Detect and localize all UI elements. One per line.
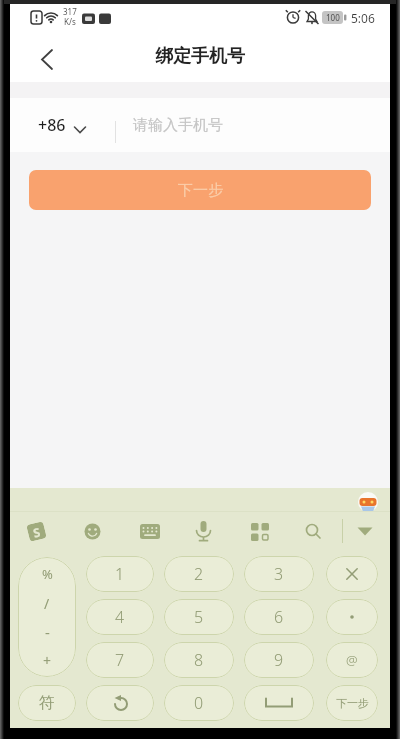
staticText: 1 [115,563,125,585]
button[interactable] [326,599,378,635]
button[interactable] [84,523,101,540]
staticText: 100 [326,12,340,23]
button[interactable]: 符 [18,685,76,721]
button[interactable]: +86 [38,98,96,152]
staticText: + [43,651,52,670]
button[interactable] [357,527,373,536]
button[interactable]: % [18,557,76,677]
staticText: 5 [194,606,204,628]
staticText: 符 [39,693,55,713]
staticText: K/s [64,16,76,27]
button[interactable] [326,556,378,592]
staticText: 请输入手机号 [133,116,223,135]
staticText: S [31,523,42,541]
button[interactable]: @ [326,642,378,678]
staticText: @ [346,651,358,669]
button[interactable]: 6 [244,599,314,635]
staticText: 绑定手机号 [155,45,245,68]
button[interactable]: 2 [164,556,234,592]
staticText: 下一步 [336,696,369,710]
staticText: / [44,594,50,613]
button[interactable] [140,524,160,539]
staticText: 6 [274,606,284,628]
button[interactable] [32,40,64,72]
button[interactable] [251,523,269,541]
staticText: 8 [194,649,204,671]
button[interactable] [195,521,212,542]
button[interactable]: 7 [86,642,154,678]
staticText: 2 [194,563,204,585]
button[interactable] [244,685,314,721]
button[interactable]: 3 [244,556,314,592]
button[interactable]: 5 [164,599,234,635]
button[interactable] [305,523,322,540]
staticText: +86 [38,114,66,136]
staticText: 3 [274,563,284,585]
button[interactable] [86,685,154,721]
button[interactable]: 1 [86,556,154,592]
button[interactable]: 0 [164,685,234,721]
button[interactable]: 4 [86,599,154,635]
staticText: 7 [115,649,125,671]
staticText: 317 [63,6,77,17]
staticText: 9 [274,649,284,671]
button[interactable]: 8 [164,642,234,678]
button[interactable]: 请输入手机号 [133,98,373,152]
button[interactable]: 下一步 [326,685,378,721]
button[interactable]: 9 [244,642,314,678]
staticText: 5:06 [351,10,375,26]
staticText: 下一步 [178,181,223,200]
staticText: % [42,565,53,583]
staticText: 4 [115,606,125,628]
staticText: - [45,622,50,642]
staticText: 0 [194,692,204,714]
button[interactable]: S [26,521,47,542]
button[interactable]: 下一步 [29,170,371,210]
